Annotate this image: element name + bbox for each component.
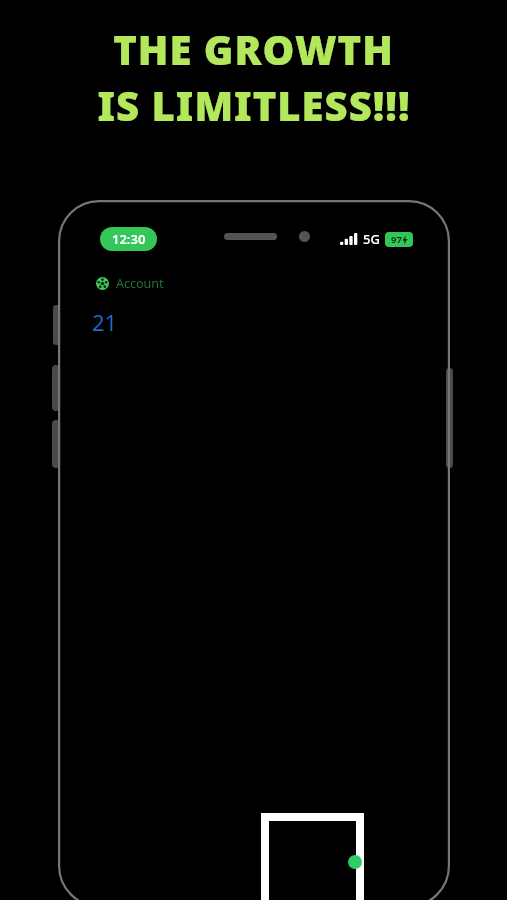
staticText: THE GROWTH xyxy=(113,22,394,76)
button[interactable]: Account xyxy=(94,273,166,294)
other: Volume up xyxy=(52,365,60,411)
staticText: 21 xyxy=(92,307,118,337)
staticText: 5G xyxy=(363,230,380,248)
button[interactable]: 21 xyxy=(90,305,120,339)
other: Volume down xyxy=(52,420,60,468)
staticText: Account xyxy=(116,275,164,292)
staticText: 12:30 xyxy=(112,230,146,248)
button[interactable]: 12:30 xyxy=(100,227,157,251)
other: Power xyxy=(446,368,453,468)
staticText: IS LIMITLESS!!! xyxy=(97,78,411,132)
staticText: 97 xyxy=(391,233,402,246)
other: Silent switch xyxy=(53,305,60,345)
